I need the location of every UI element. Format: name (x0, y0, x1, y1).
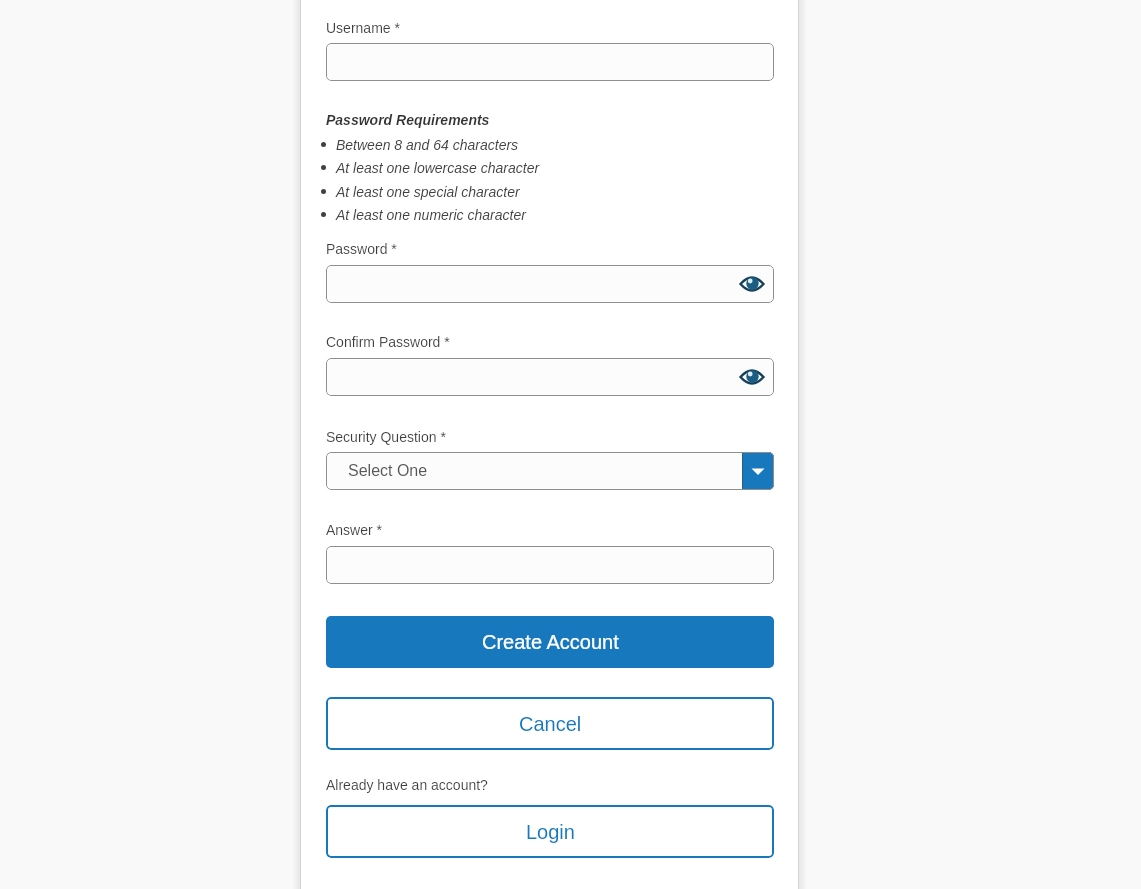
button[interactable] (326, 358, 774, 396)
staticText: At least one lowercase character (336, 160, 540, 176)
staticText: Create Account (482, 631, 619, 653)
staticText: Username * (326, 20, 400, 36)
button[interactable]: Select One (326, 452, 774, 490)
staticText: Password * (326, 241, 397, 257)
button[interactable] (326, 265, 774, 303)
staticText: Already have an account? (326, 777, 488, 793)
staticText: Login (526, 821, 575, 843)
button[interactable] (326, 546, 774, 584)
staticText: Answer * (326, 522, 383, 538)
staticText: Security Question * (326, 429, 446, 445)
staticText: At least one special character (336, 184, 520, 200)
button[interactable]: Login (326, 805, 774, 858)
staticText: Confirm Password * (326, 334, 450, 350)
button[interactable]: Cancel (326, 697, 774, 750)
button[interactable]: Create Account (326, 616, 774, 668)
button[interactable] (326, 43, 774, 81)
staticText: At least one numeric character (336, 207, 526, 223)
staticText: Between 8 and 64 characters (336, 137, 519, 153)
staticText: Select One (348, 462, 428, 480)
staticText: Cancel (519, 713, 582, 735)
staticText: Password Requirements (326, 112, 490, 128)
